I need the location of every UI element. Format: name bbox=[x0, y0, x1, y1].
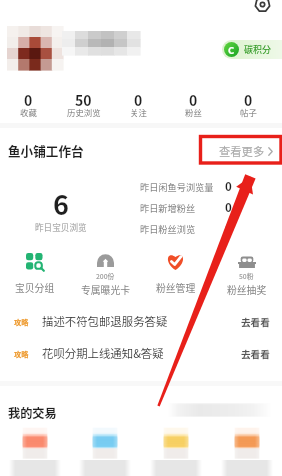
staticText: 攻略 bbox=[14, 349, 29, 359]
staticText: 6 bbox=[53, 184, 69, 223]
staticText: 花呗分期上线通知&答疑 bbox=[42, 345, 164, 362]
button[interactable]: 0 bbox=[166, 90, 221, 122]
staticText: 粉丝抽奖 bbox=[227, 283, 267, 297]
staticText: 0 bbox=[225, 220, 232, 237]
staticText: 0 bbox=[189, 90, 198, 110]
staticText: 0 bbox=[134, 90, 143, 110]
staticText: 描述不符包邮退服务答疑 bbox=[42, 313, 168, 330]
staticText: 专属曝光卡 bbox=[81, 283, 130, 297]
button[interactable]: 宝贝分组 bbox=[0, 252, 70, 295]
staticText: 粉丝 bbox=[185, 106, 202, 118]
staticText: 200份 bbox=[96, 271, 115, 281]
staticText: 攻略 bbox=[14, 317, 29, 327]
button[interactable]: 攻略 bbox=[0, 345, 282, 362]
staticText: 0 bbox=[225, 199, 232, 216]
staticText: 50粉 bbox=[239, 271, 254, 281]
button[interactable]: 0 bbox=[221, 90, 276, 122]
staticText: 去看看 bbox=[241, 315, 270, 329]
staticText: 昨日粉丝浏览 bbox=[140, 222, 196, 235]
staticText: 历史浏览 bbox=[67, 106, 101, 118]
button[interactable]: 0 bbox=[111, 90, 166, 122]
staticText: 昨日新增粉丝 bbox=[140, 201, 196, 214]
button[interactable]: 查看更多 bbox=[217, 141, 275, 161]
staticText: 昨日闲鱼号浏览量 bbox=[140, 180, 214, 193]
staticText: 粉丝管理 bbox=[156, 281, 196, 295]
staticText: 0 bbox=[225, 178, 232, 195]
staticText: 我的交易 bbox=[8, 404, 57, 422]
staticText: 碳积分 bbox=[244, 43, 272, 56]
button[interactable]: C bbox=[222, 40, 282, 59]
button[interactable] bbox=[70, 426, 140, 476]
staticText: 宝贝分组 bbox=[15, 281, 55, 295]
staticText: 0 bbox=[244, 90, 253, 110]
button[interactable]: 200份 bbox=[70, 252, 140, 297]
button[interactable]: 6 bbox=[0, 184, 122, 235]
button[interactable] bbox=[140, 426, 211, 476]
button[interactable]: 攻略 bbox=[0, 313, 282, 330]
staticText: 昨日宝贝浏览 bbox=[35, 221, 87, 233]
button[interactable]: 50 bbox=[56, 90, 111, 122]
staticText: 50 bbox=[75, 90, 92, 110]
staticText: 帖子 bbox=[240, 106, 257, 118]
staticText: 关注 bbox=[130, 106, 147, 118]
button[interactable]: 粉丝管理 bbox=[140, 252, 211, 295]
staticText: 0 bbox=[24, 90, 33, 110]
button[interactable]: 0 bbox=[0, 90, 56, 122]
button[interactable] bbox=[211, 426, 282, 476]
staticText: 去看看 bbox=[241, 347, 270, 361]
button[interactable] bbox=[0, 426, 70, 476]
staticText: 鱼小铺工作台 bbox=[8, 141, 84, 159]
staticText: 收藏 bbox=[20, 106, 37, 118]
staticText: 查看更多 bbox=[219, 143, 265, 159]
staticText: C bbox=[228, 43, 235, 57]
button[interactable]: 50粉 bbox=[211, 252, 282, 297]
button[interactable]: Settings bbox=[253, 0, 271, 13]
